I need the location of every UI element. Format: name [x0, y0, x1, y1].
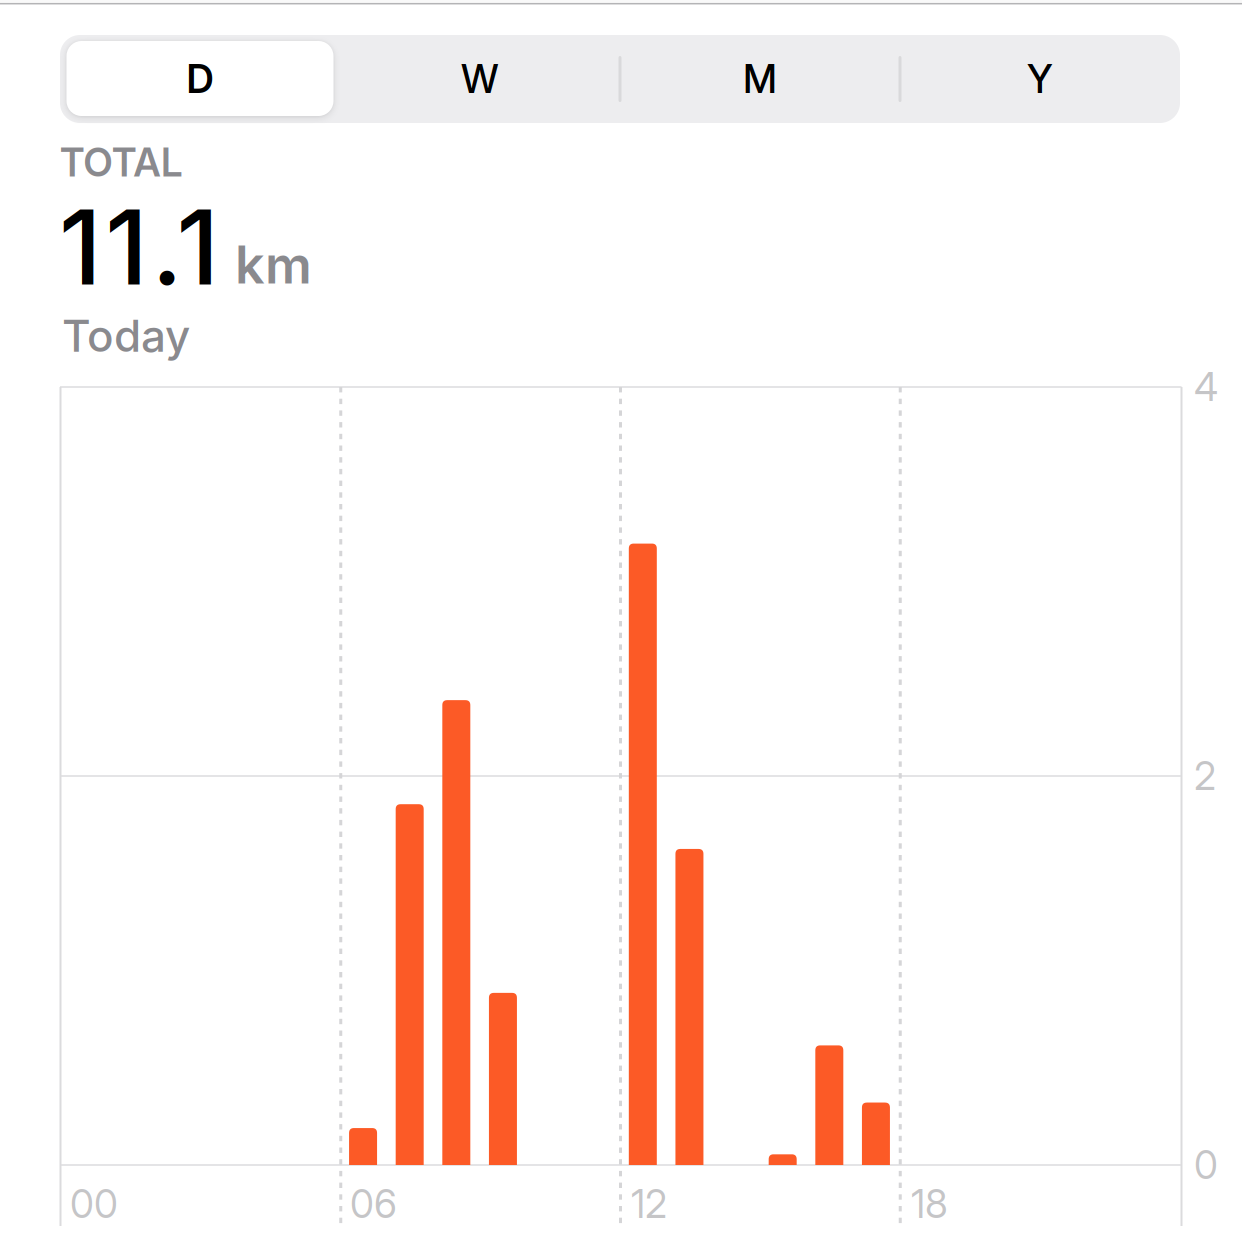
- staticText: 4: [1194, 364, 1218, 410]
- staticText: TOTAL: [60, 139, 182, 186]
- staticText: Y: [1027, 56, 1053, 102]
- staticText: D: [186, 56, 213, 102]
- button[interactable]: Y: [900, 35, 1180, 123]
- staticText: 0: [1194, 1142, 1218, 1188]
- staticText: km: [235, 233, 312, 296]
- staticText: Today: [62, 309, 190, 362]
- staticText: W: [461, 56, 499, 102]
- button[interactable]: D: [60, 35, 340, 123]
- button[interactable]: W: [340, 35, 620, 123]
- staticText: 06: [350, 1181, 397, 1227]
- staticText: 18: [911, 1181, 948, 1227]
- staticText: 11.1: [59, 185, 250, 309]
- staticText: 12: [631, 1181, 667, 1227]
- staticText: 2: [1194, 753, 1216, 799]
- staticText: M: [743, 56, 777, 102]
- button[interactable]: M: [620, 35, 900, 123]
- staticText: 00: [70, 1181, 118, 1227]
